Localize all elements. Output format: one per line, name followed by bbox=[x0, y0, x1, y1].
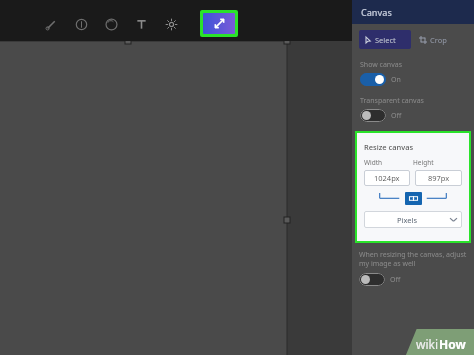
button[interactable]: Shapes bbox=[70, 13, 92, 35]
button[interactable]: Toggle on bbox=[360, 73, 386, 86]
staticText: Pixels bbox=[364, 215, 450, 225]
button[interactable]: Resize canvas tool bbox=[203, 13, 235, 34]
button[interactable]: Brush bbox=[40, 13, 62, 35]
staticText: Off bbox=[391, 111, 402, 121]
staticText: Height bbox=[413, 158, 462, 167]
button[interactable]: 897px bbox=[415, 170, 462, 186]
button[interactable]: Canvas bbox=[352, 0, 474, 24]
button[interactable]: Text bbox=[130, 13, 152, 35]
button[interactable]: Select bbox=[359, 30, 411, 49]
button[interactable]: 1024px bbox=[364, 170, 410, 186]
staticText: How bbox=[439, 336, 466, 352]
staticText: Select bbox=[375, 35, 396, 45]
staticText: On bbox=[391, 75, 401, 85]
staticText: Crop bbox=[430, 35, 447, 45]
staticText: Canvas bbox=[361, 6, 392, 18]
staticText: 897px bbox=[428, 173, 450, 183]
staticText: Show canvas bbox=[360, 60, 403, 70]
staticText: Transparent canvas bbox=[360, 96, 424, 106]
button[interactable]: Adjust bbox=[160, 13, 182, 35]
staticText: 1024px bbox=[374, 173, 400, 183]
button[interactable]: History bbox=[425, 13, 447, 35]
button[interactable]: Crop bbox=[419, 30, 447, 49]
staticText: Off bbox=[390, 275, 401, 285]
button[interactable]: Eraser bbox=[100, 13, 122, 35]
button[interactable]: Toggle off bbox=[359, 273, 385, 286]
staticText: When resizing the canvas, adjust my imag… bbox=[359, 250, 467, 268]
button[interactable]: Pixels bbox=[364, 211, 462, 228]
staticText: wiki bbox=[416, 336, 439, 352]
button[interactable]: Toggle off bbox=[360, 109, 386, 122]
button[interactable]: Paste bbox=[357, 13, 379, 35]
staticText: Width bbox=[364, 158, 413, 167]
staticText: Resize canvas bbox=[364, 142, 414, 152]
button[interactable]: Redo bbox=[459, 13, 474, 35]
button[interactable]: Undo bbox=[391, 13, 413, 35]
button[interactable]: Link width and height bbox=[405, 192, 422, 205]
